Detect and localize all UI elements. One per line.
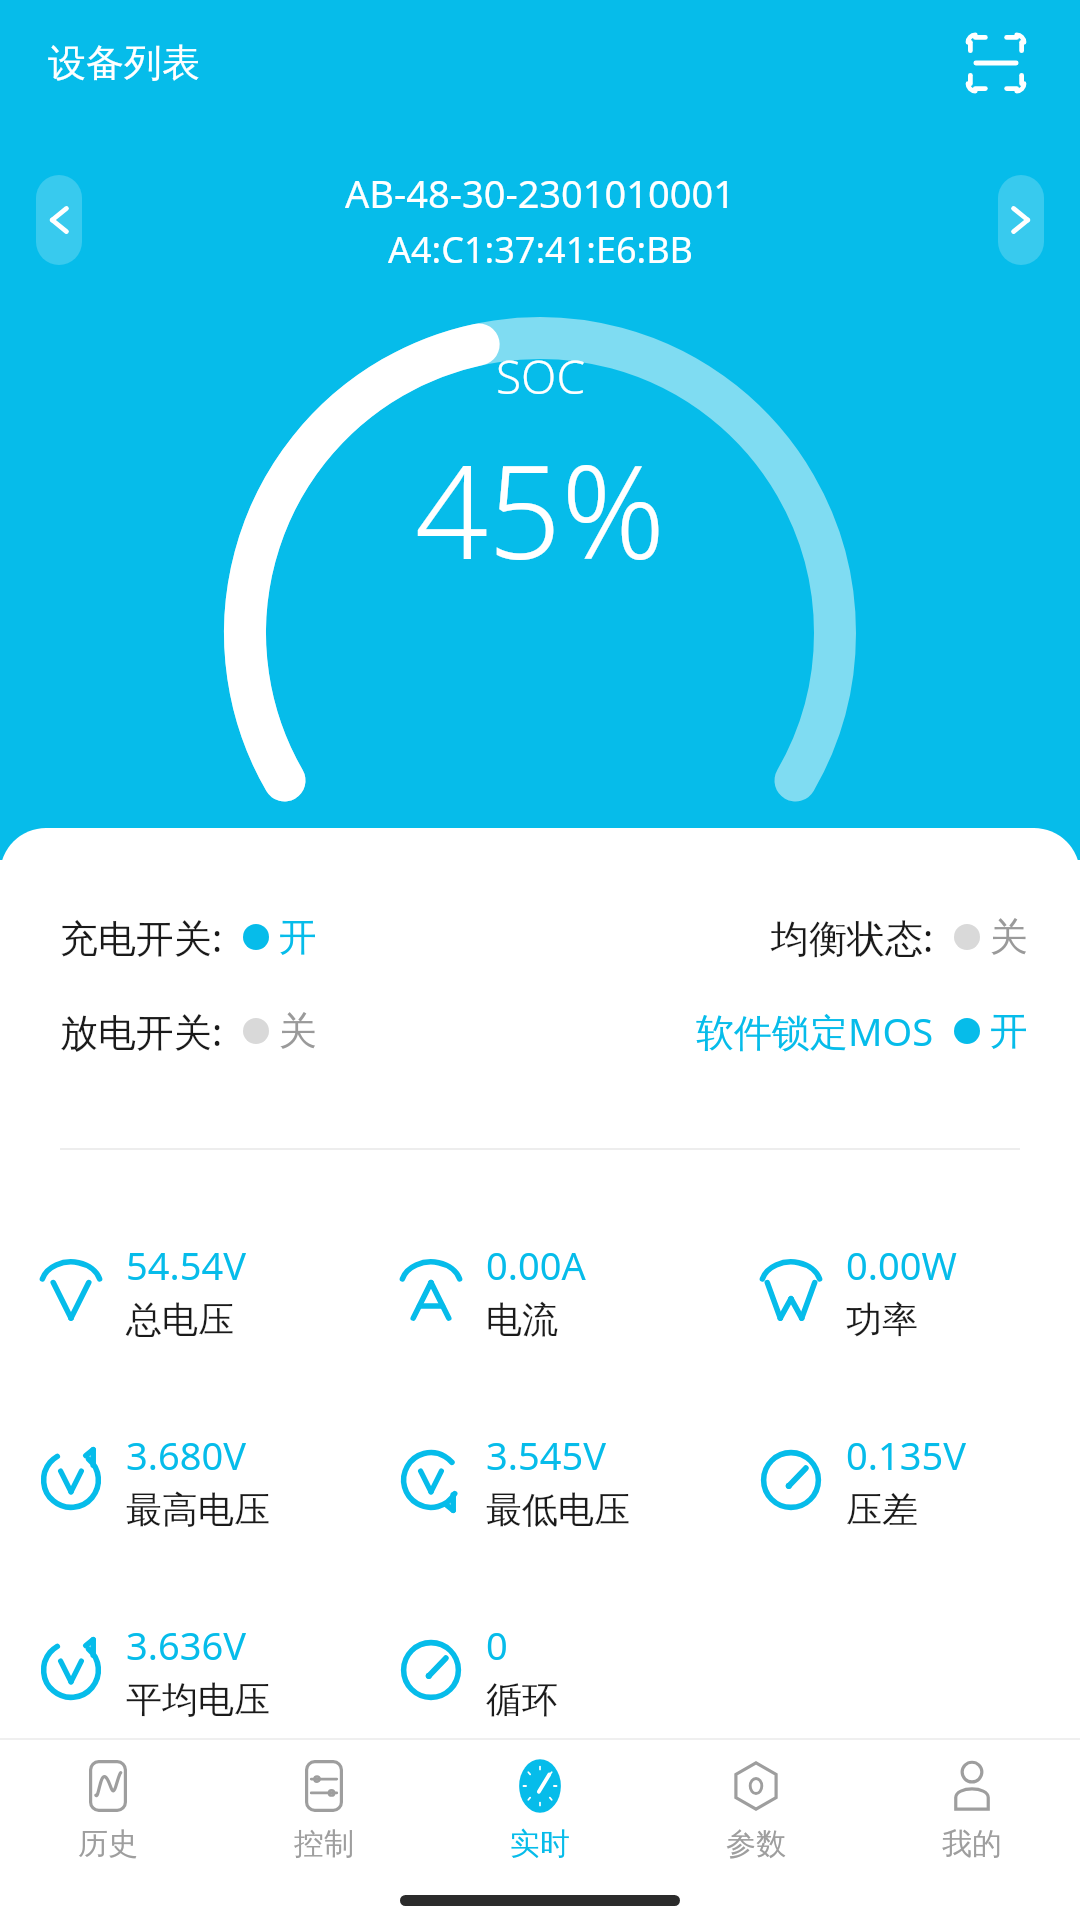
button[interactable]: 0.135V [720,1420,1080,1540]
staticText: 开 [990,1007,1028,1055]
button[interactable]: 0.00A [360,1230,720,1350]
staticText: 关 [990,913,1028,961]
button[interactable]: 下一个设备 [998,175,1044,265]
button[interactable]: 0 [360,1610,720,1730]
button[interactable]: 3.636V [0,1610,360,1730]
staticText: A4:C1:37:41:E6:BB [388,225,693,274]
staticText: 0.135V [846,1429,966,1481]
staticText: 最高电压 [126,1487,270,1532]
button[interactable]: 我的 [864,1740,1080,1880]
staticText: 我的 [942,1825,1002,1863]
staticText: 45% [415,422,666,596]
staticText: 均衡状态: [771,911,934,963]
button[interactable]: 上一个设备 [36,175,82,265]
button[interactable]: 控制 [216,1740,432,1880]
staticText: 放电开关: [60,1005,223,1057]
button[interactable]: 历史 [0,1740,216,1880]
staticText: 参数 [726,1825,786,1863]
staticText: SOC [496,345,586,408]
staticText: 关 [279,1007,317,1055]
staticText: 0.00A [486,1239,586,1291]
staticText: 实时 [510,1825,570,1863]
staticText: 开 [279,913,317,961]
staticText: 功率 [846,1297,918,1342]
staticText: 电流 [486,1297,558,1342]
button[interactable]: 参数 [648,1740,864,1880]
staticText: 软件锁定MOS [696,1005,934,1057]
button[interactable]: 3.680V [0,1420,360,1540]
staticText: AB-48-30-2301010001 [345,167,735,219]
staticText: 3.680V [126,1429,246,1481]
button[interactable]: 54.54V [0,1230,360,1350]
button[interactable]: 放电开关: [60,984,540,1078]
staticText: 0 [486,1619,508,1671]
button[interactable]: 扫描 [960,27,1032,99]
staticText: 0.00W [846,1239,957,1291]
button[interactable]: 实时 [432,1740,648,1880]
staticText: 压差 [846,1487,918,1532]
staticText: 3.545V [486,1429,606,1481]
staticText: 平均电压 [126,1677,270,1722]
staticText: 设备列表 [48,39,200,87]
staticText: 控制 [294,1825,354,1863]
staticText: 最低电压 [486,1487,630,1532]
staticText: 历史 [78,1825,138,1863]
staticText: 循环 [486,1677,558,1722]
button[interactable]: 软件锁定MOS [540,984,1028,1078]
staticText: 3.636V [126,1619,246,1671]
button[interactable]: 充电开关: [60,890,540,984]
staticText: 总电压 [126,1297,234,1342]
staticText: 充电开关: [60,911,223,963]
staticText: 54.54V [126,1239,246,1291]
button[interactable]: 均衡状态: [540,890,1028,984]
button[interactable]: 0.00W [720,1230,1080,1350]
button[interactable]: 3.545V [360,1420,720,1540]
